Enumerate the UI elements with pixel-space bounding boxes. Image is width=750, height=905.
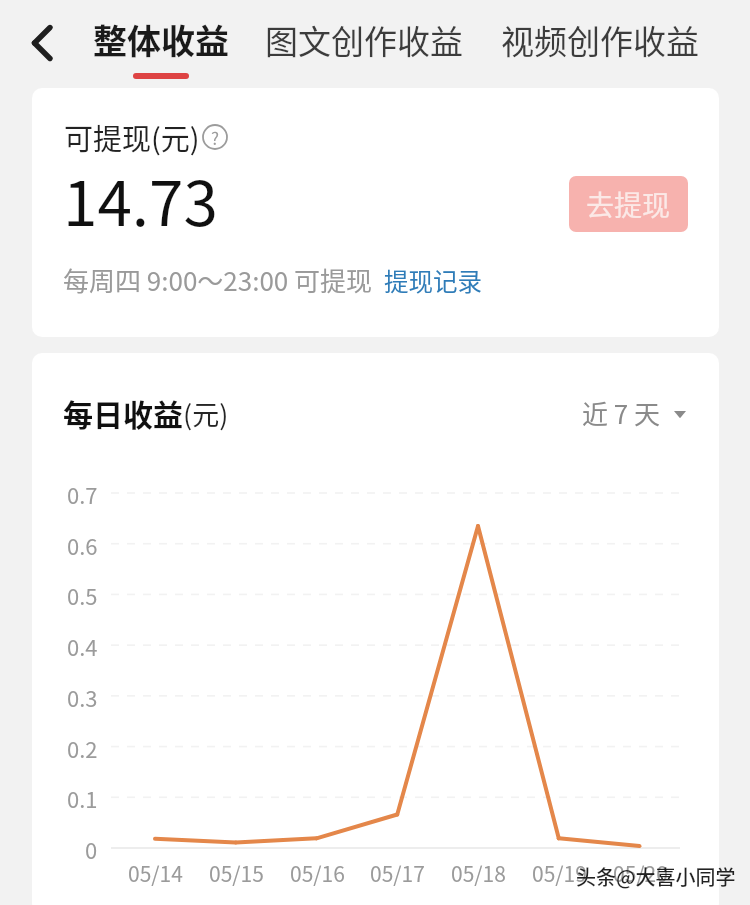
- staticText: 0.4: [67, 630, 98, 660]
- staticText: 05/15: [209, 858, 264, 888]
- button[interactable]: 近 7 天: [582, 394, 686, 432]
- staticText: 每日收益: [63, 391, 183, 434]
- button[interactable]: 去提现: [569, 176, 688, 232]
- staticText: 05/19: [532, 858, 587, 888]
- button[interactable]: 提现记录: [384, 263, 482, 298]
- staticText: 可提现(元): [64, 116, 200, 158]
- staticText: 0.3: [67, 681, 98, 711]
- staticText: 去提现: [586, 184, 671, 225]
- staticText: 0.7: [67, 478, 98, 508]
- button[interactable]: 图文创作收益: [260, 0, 468, 88]
- staticText: 0.6: [67, 529, 98, 559]
- staticText: 头条@大喜小同学: [576, 862, 736, 891]
- staticText: 整体收益: [93, 15, 229, 64]
- button[interactable]: 视频创作收益: [496, 0, 704, 88]
- button[interactable]: Help: [202, 124, 228, 150]
- staticText: 0.5: [67, 579, 98, 609]
- staticText: 05/17: [370, 858, 425, 888]
- staticText: 视频创作收益: [501, 16, 699, 64]
- staticText: 0.2: [67, 732, 98, 762]
- staticText: 每周四 9:00～23:00 可提现: [63, 261, 373, 299]
- staticText: 0.1: [67, 782, 98, 812]
- staticText: 近 7 天: [582, 394, 661, 432]
- staticText: 05/16: [290, 858, 345, 888]
- staticText: (元): [183, 394, 229, 433]
- staticText: ?: [211, 125, 220, 150]
- staticText: 0: [85, 833, 98, 863]
- staticText: 05/20: [613, 858, 668, 888]
- button[interactable]: 整体收益: [91, 0, 231, 88]
- staticText: 05/18: [451, 858, 506, 888]
- staticText: 图文创作收益: [265, 16, 463, 64]
- staticText: 14.73: [63, 154, 218, 244]
- button[interactable]: Back: [8, 12, 70, 74]
- staticText: 05/14: [128, 858, 183, 888]
